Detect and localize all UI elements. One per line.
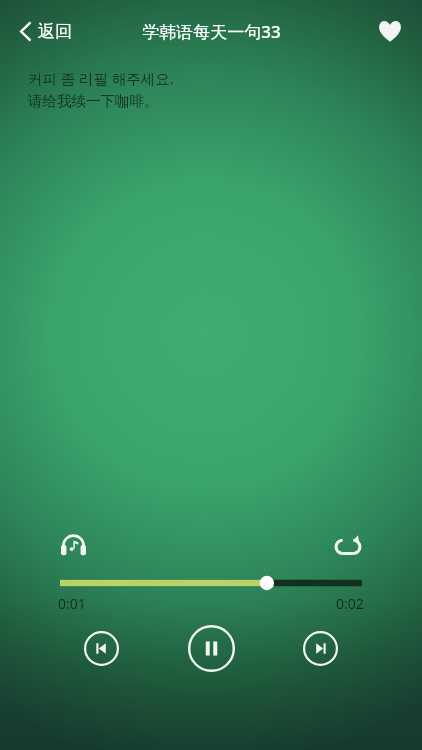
button[interactable]: Audio mode: [52, 525, 95, 567]
button[interactable]: Seek: [60, 575, 362, 591]
button[interactable]: Repeat: [326, 527, 370, 565]
button[interactable]: Previous: [84, 631, 119, 666]
button[interactable]: Pause: [188, 625, 235, 672]
staticText: 学韩语每天一句33: [142, 20, 281, 43]
staticText: 返回: [38, 21, 72, 42]
button[interactable]: Next: [303, 631, 338, 666]
staticText: 0:01: [58, 594, 86, 613]
staticText: 커피 좀 리필 해주세요.: [28, 68, 174, 88]
staticText: 0:02: [336, 594, 364, 613]
button[interactable]: 返回: [14, 13, 78, 50]
button[interactable]: Favorite: [372, 14, 408, 48]
staticText: 请给我续一下咖啡。: [28, 92, 159, 110]
